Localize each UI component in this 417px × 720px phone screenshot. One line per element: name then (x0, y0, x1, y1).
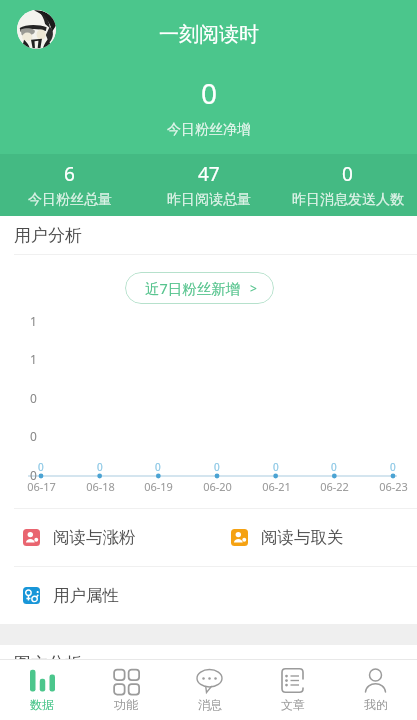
staticText: 06-22 (320, 479, 349, 494)
staticText: 阅读与取关 (261, 527, 344, 548)
staticText: 06-23 (379, 479, 408, 494)
staticText: 0 (30, 428, 37, 444)
button[interactable]: 文章 (251, 660, 334, 720)
staticText: 47 (198, 161, 220, 187)
staticText: 功能 (114, 697, 138, 712)
staticText: 0 (155, 460, 161, 474)
staticText: 阅读与涨粉 (53, 527, 136, 548)
staticText: 06-18 (86, 479, 115, 494)
button[interactable]: 数据 (0, 660, 84, 720)
button[interactable]: 6 (0, 154, 139, 216)
staticText: 6 (64, 161, 75, 187)
button[interactable]: 功能 (84, 660, 168, 720)
button[interactable]: 用户属性 (0, 567, 208, 624)
button[interactable]: Profile (17, 10, 56, 49)
staticText: 0 (38, 460, 44, 474)
staticText: 1 (30, 313, 37, 329)
button[interactable]: 阅读与取关 (208, 509, 417, 566)
staticText: 0 (273, 460, 279, 474)
staticText: 文章 (281, 697, 305, 712)
staticText: > (250, 280, 257, 296)
button[interactable]: 0 (278, 154, 417, 216)
staticText: 数据 (30, 697, 54, 712)
staticText: 我的 (364, 697, 388, 712)
staticText: 0 (201, 74, 218, 112)
staticText: 0 (30, 390, 37, 406)
staticText: 近7日粉丝新增 (145, 278, 241, 298)
staticText: 消息 (198, 697, 222, 712)
staticText: 昨日消息发送人数 (292, 191, 404, 209)
staticText: 昨日阅读总量 (167, 191, 251, 209)
staticText: 0 (342, 161, 353, 187)
button[interactable]: 阅读与涨粉 (0, 509, 208, 566)
staticText: 0 (97, 460, 103, 474)
staticText: 图文分析 (14, 653, 82, 659)
staticText: 0 (390, 460, 396, 474)
staticText: 0 (331, 460, 337, 474)
staticText: 今日粉丝净增 (167, 121, 251, 139)
staticText: 06-21 (262, 479, 291, 494)
staticText: 06-17 (27, 479, 56, 494)
button[interactable]: 47 (139, 154, 278, 216)
staticText: 0 (214, 460, 220, 474)
button[interactable]: 近7日粉丝新增 (125, 272, 274, 304)
staticText: 06-19 (144, 479, 173, 494)
staticText: 06-20 (203, 479, 232, 494)
staticText: 一刻阅读时 (159, 22, 259, 47)
button[interactable]: 消息 (168, 660, 251, 720)
staticText: 0 (30, 467, 37, 483)
staticText: 用户分析 (14, 225, 82, 246)
staticText: 今日粉丝总量 (28, 191, 112, 209)
staticText: 1 (30, 351, 37, 367)
staticText: 用户属性 (53, 585, 119, 606)
button[interactable]: 我的 (334, 660, 417, 720)
